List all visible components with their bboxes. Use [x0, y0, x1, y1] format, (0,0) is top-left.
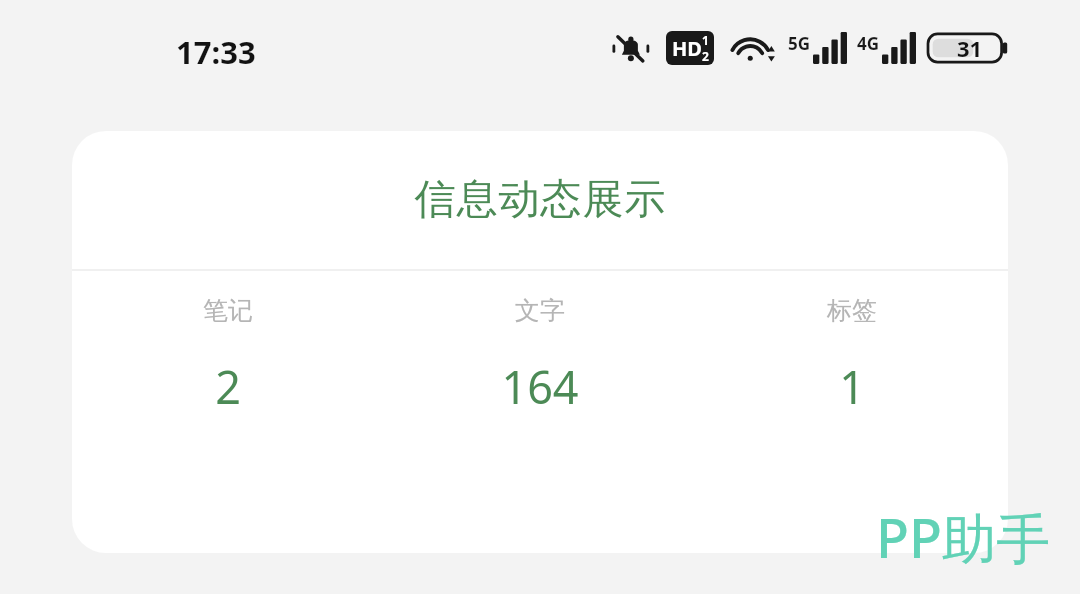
staticText: 2 [702, 48, 709, 64]
button[interactable]: 文字 [384, 271, 696, 553]
staticText: 17:33 [176, 31, 256, 73]
staticText: HD [672, 35, 702, 62]
staticText: 4G [857, 32, 880, 55]
staticText: PP助手 [876, 500, 1050, 574]
button[interactable]: 标签 [696, 271, 1008, 553]
staticText: 标签 [827, 295, 877, 326]
staticText: 信息动态展示 [414, 174, 666, 226]
button[interactable]: 信息动态展示 [72, 131, 1008, 553]
button[interactable]: 笔记 [72, 271, 384, 553]
other: Silent mode [608, 31, 652, 65]
staticText: 2 [215, 356, 241, 417]
other: Wi-Fi [730, 31, 776, 65]
other: Battery 31 percent [928, 30, 1008, 66]
staticText: 5G [788, 32, 811, 55]
staticText: 31 [957, 33, 983, 63]
staticText: 1 [839, 356, 865, 417]
staticText: 文字 [515, 295, 565, 326]
staticText: 164 [501, 356, 579, 417]
staticText: 笔记 [203, 295, 253, 326]
staticText: 1 [702, 32, 709, 48]
